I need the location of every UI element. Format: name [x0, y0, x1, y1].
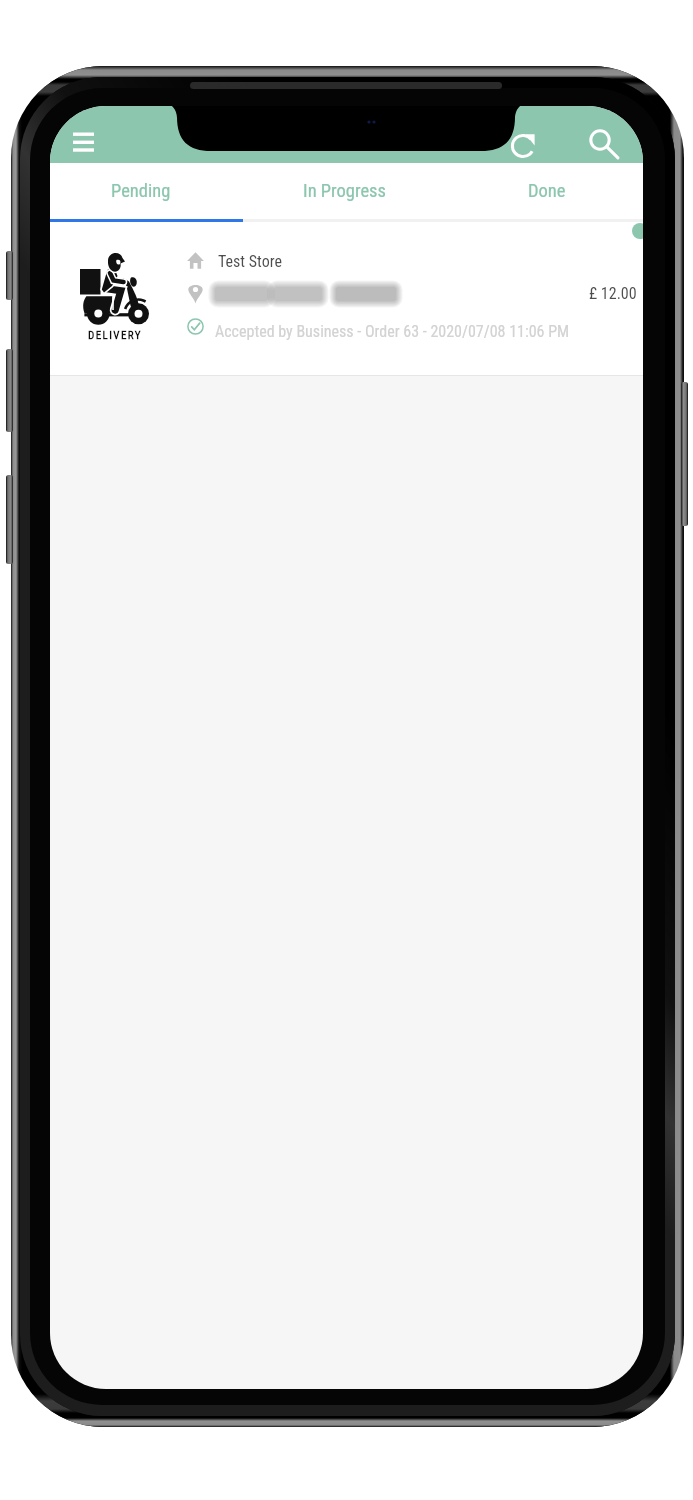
staticText: DELIVERY: [88, 329, 142, 342]
staticText: Test Store: [218, 252, 282, 271]
staticText: £ 12.00: [589, 284, 637, 303]
button[interactable]: Search: [578, 118, 622, 162]
button[interactable]: In Progress: [247, 163, 445, 219]
button[interactable]: DELIVERY: [50, 222, 643, 376]
button[interactable]: Done: [445, 163, 643, 219]
staticText: Done: [528, 180, 566, 202]
button[interactable]: Refresh: [502, 123, 546, 167]
staticText: Pending: [111, 180, 171, 202]
button[interactable]: Menu: [61, 114, 106, 159]
staticText: Accepted by Business - Order 63 - 2020/0…: [215, 322, 570, 341]
staticText: In Progress: [303, 180, 386, 202]
button[interactable]: Pending: [50, 163, 247, 219]
